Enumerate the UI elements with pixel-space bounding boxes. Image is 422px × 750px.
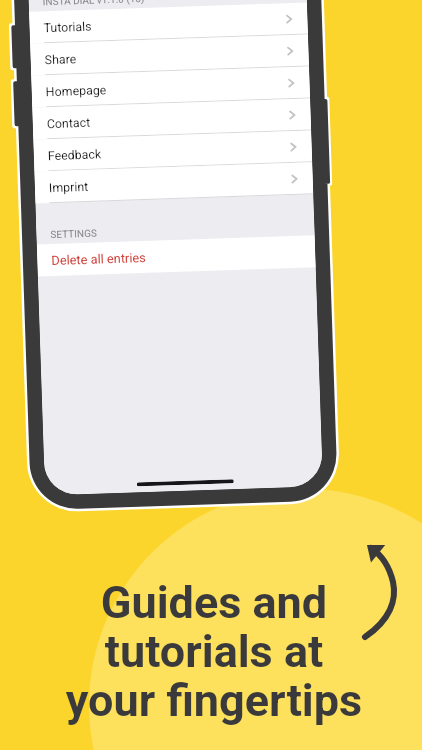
button[interactable]: Tutorials — [29, 2, 308, 44]
staticText: Contact — [46, 115, 91, 131]
button[interactable]: Share — [30, 34, 309, 76]
staticText: Imprint — [49, 179, 89, 195]
staticText: Homepage — [45, 82, 107, 99]
staticText: Delete all entries — [51, 250, 146, 268]
button[interactable]: Contact — [32, 98, 311, 140]
staticText: Share — [44, 51, 77, 67]
button[interactable]: Imprint — [34, 162, 313, 204]
staticText: INSTA DIAL v1.1.0 (10) — [42, 0, 145, 8]
staticText: Tutorials — [43, 19, 93, 35]
button[interactable]: Homepage — [31, 66, 310, 108]
staticText: Feedback — [48, 146, 102, 163]
staticText: Guides and tutorials at your fingertips — [3, 576, 422, 727]
staticText: SETTINGS — [50, 228, 98, 241]
button[interactable]: Delete all entries — [37, 235, 316, 276]
button[interactable]: Feedback — [33, 130, 312, 172]
